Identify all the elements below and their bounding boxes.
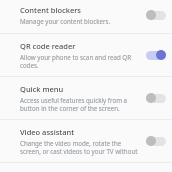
- button[interactable]: QR code reader: [0, 34, 172, 76]
- staticText: Quick menu: [20, 84, 64, 94]
- staticText: Allow your phone to scan and read QR cod…: [20, 53, 140, 69]
- staticText: Content blockers: [20, 5, 82, 15]
- button[interactable]: Content blockers toggle: [144, 7, 168, 23]
- button[interactable]: QR code reader toggle: [144, 47, 168, 63]
- staticText: Change the video mode, rotate the screen…: [20, 139, 140, 155]
- button[interactable]: Content blockers: [0, 0, 172, 33]
- button[interactable]: Quick menu toggle: [144, 90, 168, 106]
- staticText: Access useful features quickly from a bu…: [20, 96, 140, 112]
- staticText: Video assistant: [20, 127, 75, 137]
- button[interactable]: Video assistant: [0, 120, 172, 162]
- button[interactable]: Video assistant toggle: [144, 133, 168, 149]
- staticText: QR code reader: [20, 41, 76, 51]
- staticText: Manage your content blockers.: [20, 17, 111, 25]
- button[interactable]: Quick menu: [0, 77, 172, 119]
